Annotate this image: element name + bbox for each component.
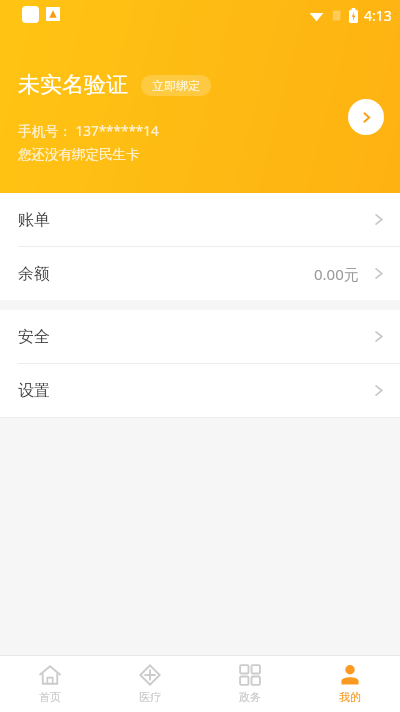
button[interactable]: 账单 xyxy=(0,193,400,246)
button[interactable]: 安全 xyxy=(0,310,400,363)
staticText: 首页 xyxy=(39,690,61,704)
button[interactable]: 首页 xyxy=(0,656,100,712)
staticText: 立即绑定 xyxy=(152,78,200,93)
staticText: 手机号： 137******14 xyxy=(18,122,159,140)
staticText: 我的 xyxy=(339,690,361,704)
staticText: 0.00元 xyxy=(314,264,359,284)
staticText: 医疗 xyxy=(139,690,161,704)
button[interactable]: 实名验证 xyxy=(348,99,384,135)
button[interactable]: 立即绑定 xyxy=(141,75,211,96)
staticText: 4:13 xyxy=(364,6,392,25)
button[interactable]: 我的 xyxy=(300,656,400,712)
staticText: 设置 xyxy=(18,381,50,401)
staticText: 余额 xyxy=(18,264,50,284)
staticText: 您还没有绑定民生卡 xyxy=(18,146,140,163)
button[interactable]: 政务 xyxy=(200,656,300,712)
staticText: 未实名验证 xyxy=(18,71,128,99)
button[interactable]: 余额 xyxy=(0,247,400,300)
staticText: 政务 xyxy=(239,690,261,704)
button[interactable]: 设置 xyxy=(0,364,400,417)
staticText: 安全 xyxy=(18,327,50,347)
button[interactable]: 医疗 xyxy=(100,656,200,712)
staticText: 账单 xyxy=(18,210,50,230)
